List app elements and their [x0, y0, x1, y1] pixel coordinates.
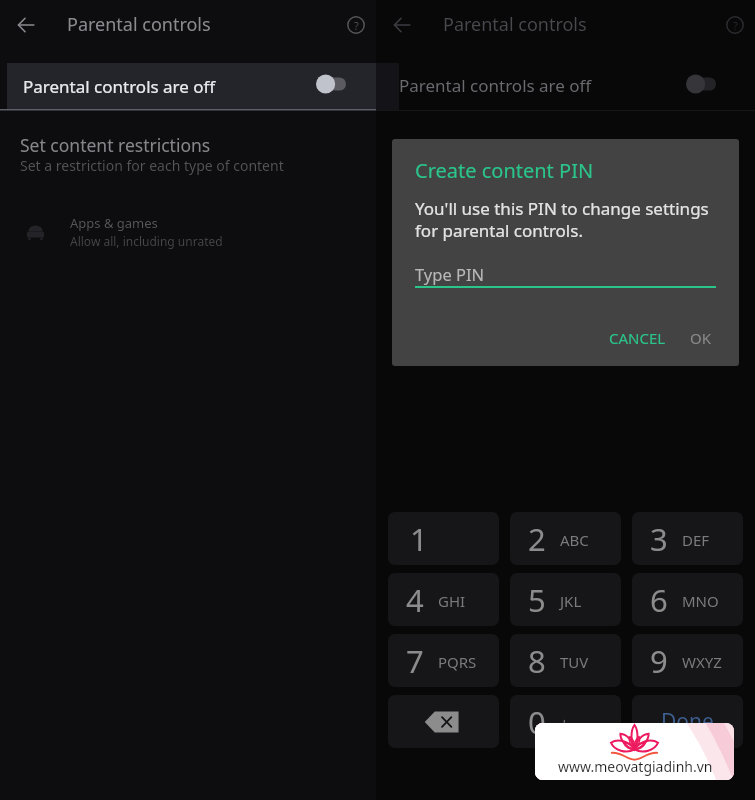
staticText: Parental controls [443, 12, 587, 37]
staticText: 2 [528, 518, 546, 560]
staticText: 6 [650, 579, 668, 621]
staticText: Create content PIN [415, 157, 594, 184]
button[interactable]: 9 [632, 634, 743, 687]
staticText: WXYZ [682, 652, 722, 672]
staticText: ? [733, 18, 738, 33]
button[interactable]: 3 [632, 512, 743, 565]
staticText: JKL [560, 591, 582, 611]
staticText: 7 [406, 640, 424, 682]
staticText: TUV [560, 652, 589, 672]
staticText: Allow all, including unrated [70, 233, 223, 249]
staticText: MNO [682, 591, 719, 611]
button[interactable]: 4 [388, 573, 499, 626]
staticText: Apps & games [70, 214, 158, 232]
button[interactable]: 7 [388, 634, 499, 687]
staticText: CANCEL [609, 328, 666, 348]
staticText: Set a restriction for each type of conte… [20, 156, 284, 175]
button[interactable]: CANCEL [597, 320, 678, 356]
staticText: Parental controls are off [399, 74, 592, 97]
staticText: GHI [438, 591, 466, 611]
button[interactable]: Done [632, 695, 743, 748]
staticText: You'll use this PIN to change settings f… [415, 197, 729, 242]
staticText: 0 [528, 701, 546, 743]
staticText: ABC [560, 530, 589, 550]
staticText: Parental controls are off [23, 75, 216, 98]
staticText: ? [354, 18, 359, 33]
button[interactable]: Parental controls are off [7, 63, 376, 109]
staticText: 1 [410, 518, 428, 560]
button[interactable]: Help [340, 9, 372, 41]
button[interactable]: Back [18, 17, 34, 33]
staticText: 4 [406, 579, 424, 621]
button[interactable]: 2 [510, 512, 621, 565]
staticText: Done [661, 707, 714, 736]
button[interactable]: Back [394, 17, 410, 33]
staticText: Type PIN [415, 263, 485, 285]
button[interactable]: 0 [510, 695, 621, 748]
staticText: 9 [650, 640, 668, 682]
staticText: OK [690, 328, 712, 348]
button[interactable]: OK [678, 320, 724, 356]
staticText: Set content restrictions [20, 133, 211, 157]
staticText: 3 [650, 518, 668, 560]
staticText: 8 [528, 640, 546, 682]
button[interactable]: Help [719, 9, 751, 41]
staticText: PQRS [438, 652, 477, 672]
button[interactable]: Apps & games [0, 208, 376, 254]
staticText: + [560, 713, 569, 733]
staticText: www.meovatgiadinh.vn [558, 757, 713, 776]
button[interactable]: 5 [510, 573, 621, 626]
staticText: DEF [682, 530, 710, 550]
button[interactable]: 1 [388, 512, 499, 565]
button[interactable]: 6 [632, 573, 743, 626]
staticText: Parental controls [67, 12, 211, 37]
button[interactable]: 8 [510, 634, 621, 687]
staticText: 5 [528, 579, 546, 621]
button[interactable]: Backspace [388, 695, 499, 748]
